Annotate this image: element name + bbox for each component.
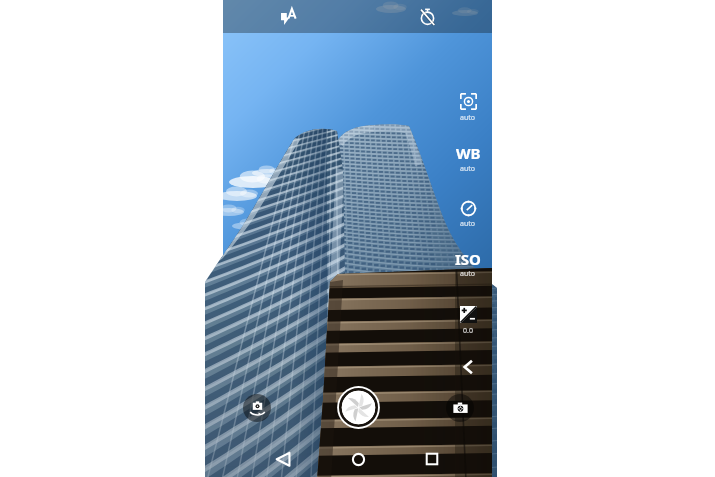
button[interactable]: ISO sensitivity xyxy=(448,246,488,278)
staticText: auto xyxy=(460,164,476,174)
button[interactable]: Exposure compensation xyxy=(448,302,488,335)
button[interactable]: Flash auto xyxy=(271,0,305,33)
button[interactable]: Recent apps xyxy=(418,445,446,473)
staticText: auto xyxy=(460,269,476,279)
button[interactable]: Collapse controls xyxy=(453,352,483,382)
button[interactable]: Timer off xyxy=(410,0,444,33)
button[interactable]: Panorama mode xyxy=(243,394,271,422)
staticText: WB xyxy=(456,143,481,163)
button[interactable]: Shutter speed xyxy=(448,196,488,228)
staticText: auto xyxy=(460,219,476,229)
button[interactable]: White balance xyxy=(448,140,488,173)
button[interactable]: Switch camera mode xyxy=(446,394,474,422)
button[interactable]: Take photo xyxy=(335,384,382,431)
staticText: ISO xyxy=(455,249,481,269)
button[interactable]: Home xyxy=(344,445,372,473)
button[interactable]: Focus mode xyxy=(448,89,488,122)
button[interactable]: Back xyxy=(269,445,297,473)
button[interactable]: Flash auto xyxy=(223,0,492,33)
staticText: auto xyxy=(460,113,476,123)
staticText: 0.0 xyxy=(463,326,473,336)
